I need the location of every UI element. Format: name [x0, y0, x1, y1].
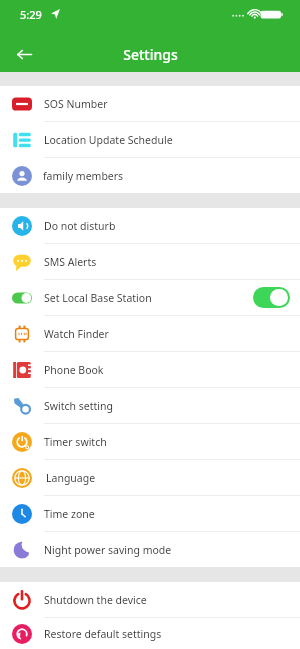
button[interactable]: Timer switch: [0, 424, 300, 460]
staticText: Settings: [123, 45, 178, 64]
staticText: Phone Book: [44, 363, 300, 377]
staticText: Timer switch: [44, 435, 300, 449]
staticText: Restore default settings: [44, 627, 300, 641]
staticText: Set Local Base Station: [44, 291, 253, 305]
staticText: Time zone: [44, 507, 300, 521]
button[interactable]: SOS Number: [0, 86, 300, 122]
staticText: Switch setting: [44, 399, 300, 413]
staticText: SMS Alerts: [44, 255, 300, 269]
staticText: 5:29: [20, 7, 42, 22]
staticText: Language: [46, 471, 300, 485]
button[interactable]: Set Local Base Station toggle: [253, 287, 290, 308]
button[interactable]: Shutdown the device: [0, 582, 300, 618]
staticText: Watch Finder: [44, 327, 300, 341]
button[interactable]: Back: [0, 36, 48, 72]
button[interactable]: Language: [0, 460, 300, 496]
button[interactable]: Restore default settings: [0, 618, 300, 649]
button[interactable]: Location Update Schedule: [0, 122, 300, 158]
button[interactable]: Phone Book: [0, 352, 300, 388]
button[interactable]: Switch setting: [0, 388, 300, 424]
button[interactable]: Time zone: [0, 496, 300, 532]
staticText: Night power saving mode: [44, 543, 300, 557]
button[interactable]: family members: [0, 158, 300, 193]
staticText: Shutdown the device: [44, 593, 300, 607]
button[interactable]: Do not disturb: [0, 208, 300, 244]
button[interactable]: Set Local Base Station: [0, 280, 300, 316]
button[interactable]: Watch Finder: [0, 316, 300, 352]
button[interactable]: SMS Alerts: [0, 244, 300, 280]
staticText: Location Update Schedule: [44, 133, 300, 147]
staticText: Do not disturb: [44, 219, 300, 233]
button[interactable]: Night power saving mode: [0, 532, 300, 567]
staticText: family members: [43, 169, 299, 183]
staticText: SOS Number: [44, 97, 300, 111]
